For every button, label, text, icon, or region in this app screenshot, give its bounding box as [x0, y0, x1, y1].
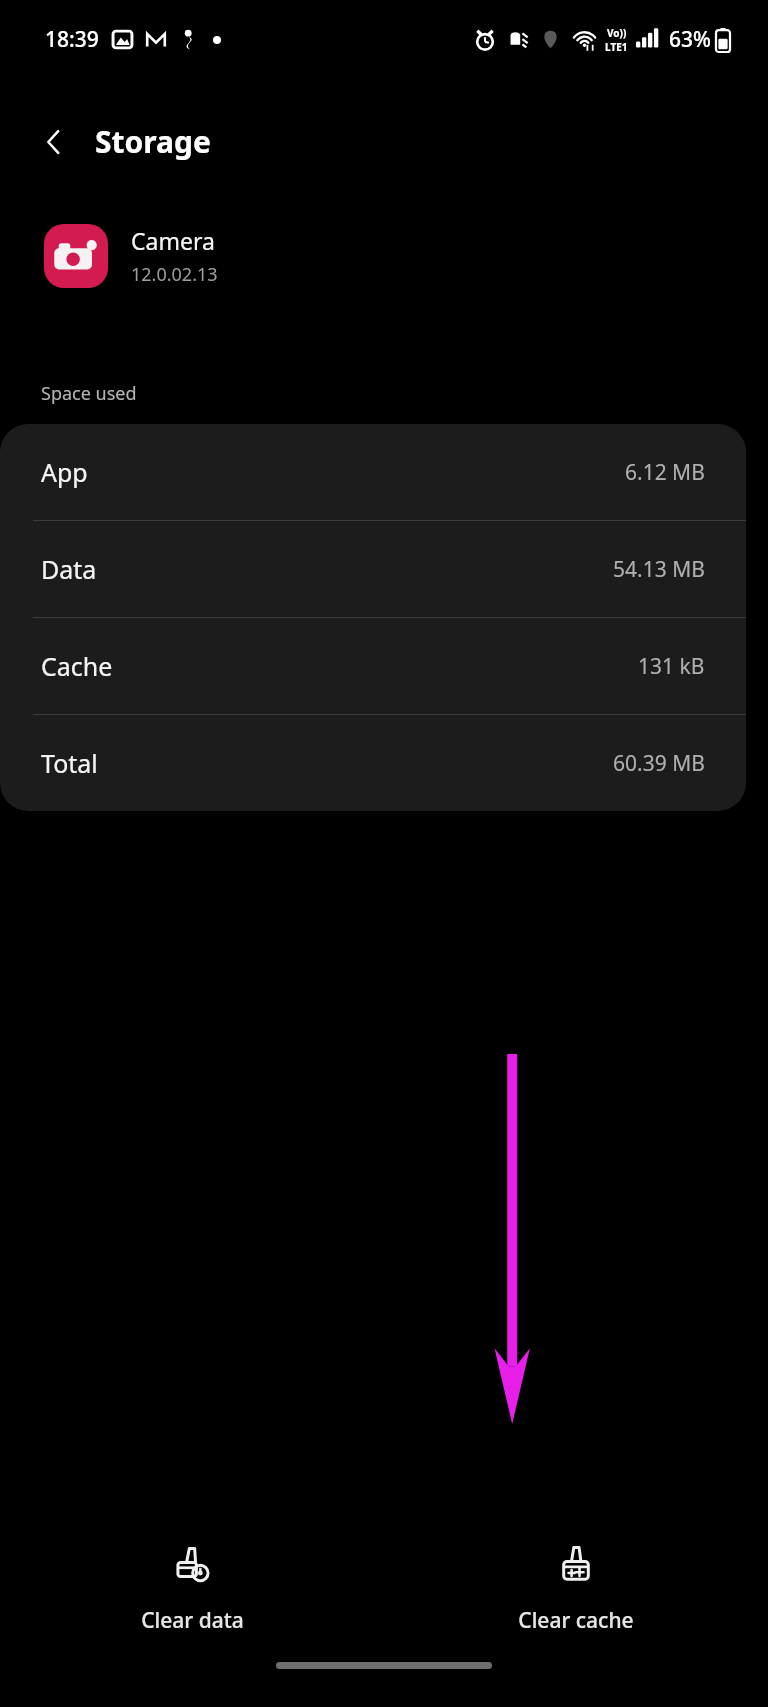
button[interactable]: Clear data — [0, 1517, 384, 1662]
staticText: Clear data — [141, 1606, 244, 1635]
staticText: 12.0.02.13 — [131, 262, 218, 287]
staticText: App — [41, 455, 88, 489]
button[interactable]: Cache — [0, 618, 746, 714]
staticText: Storage — [95, 121, 211, 162]
staticText: Data — [41, 552, 97, 586]
staticText: 60.39 MB — [613, 749, 705, 778]
button[interactable]: Back — [26, 114, 82, 170]
staticText: 18:39 — [45, 25, 99, 54]
button[interactable]: Data — [0, 521, 746, 617]
button[interactable]: Clear cache — [384, 1517, 768, 1662]
staticText: 54.13 MB — [613, 555, 705, 584]
staticText: 63% — [669, 25, 711, 54]
button[interactable]: App — [0, 424, 746, 520]
staticText: LTE1 — [605, 40, 628, 54]
staticText: Cache — [41, 649, 113, 683]
staticText: Camera — [131, 225, 215, 256]
staticText: 131 kB — [638, 652, 705, 681]
button[interactable]: Total — [0, 715, 746, 811]
staticText: Vo)) — [607, 26, 627, 40]
staticText: 6.12 MB — [625, 458, 705, 487]
staticText: Clear cache — [518, 1606, 634, 1635]
staticText: Total — [41, 746, 98, 780]
staticText: Space used — [41, 381, 137, 406]
